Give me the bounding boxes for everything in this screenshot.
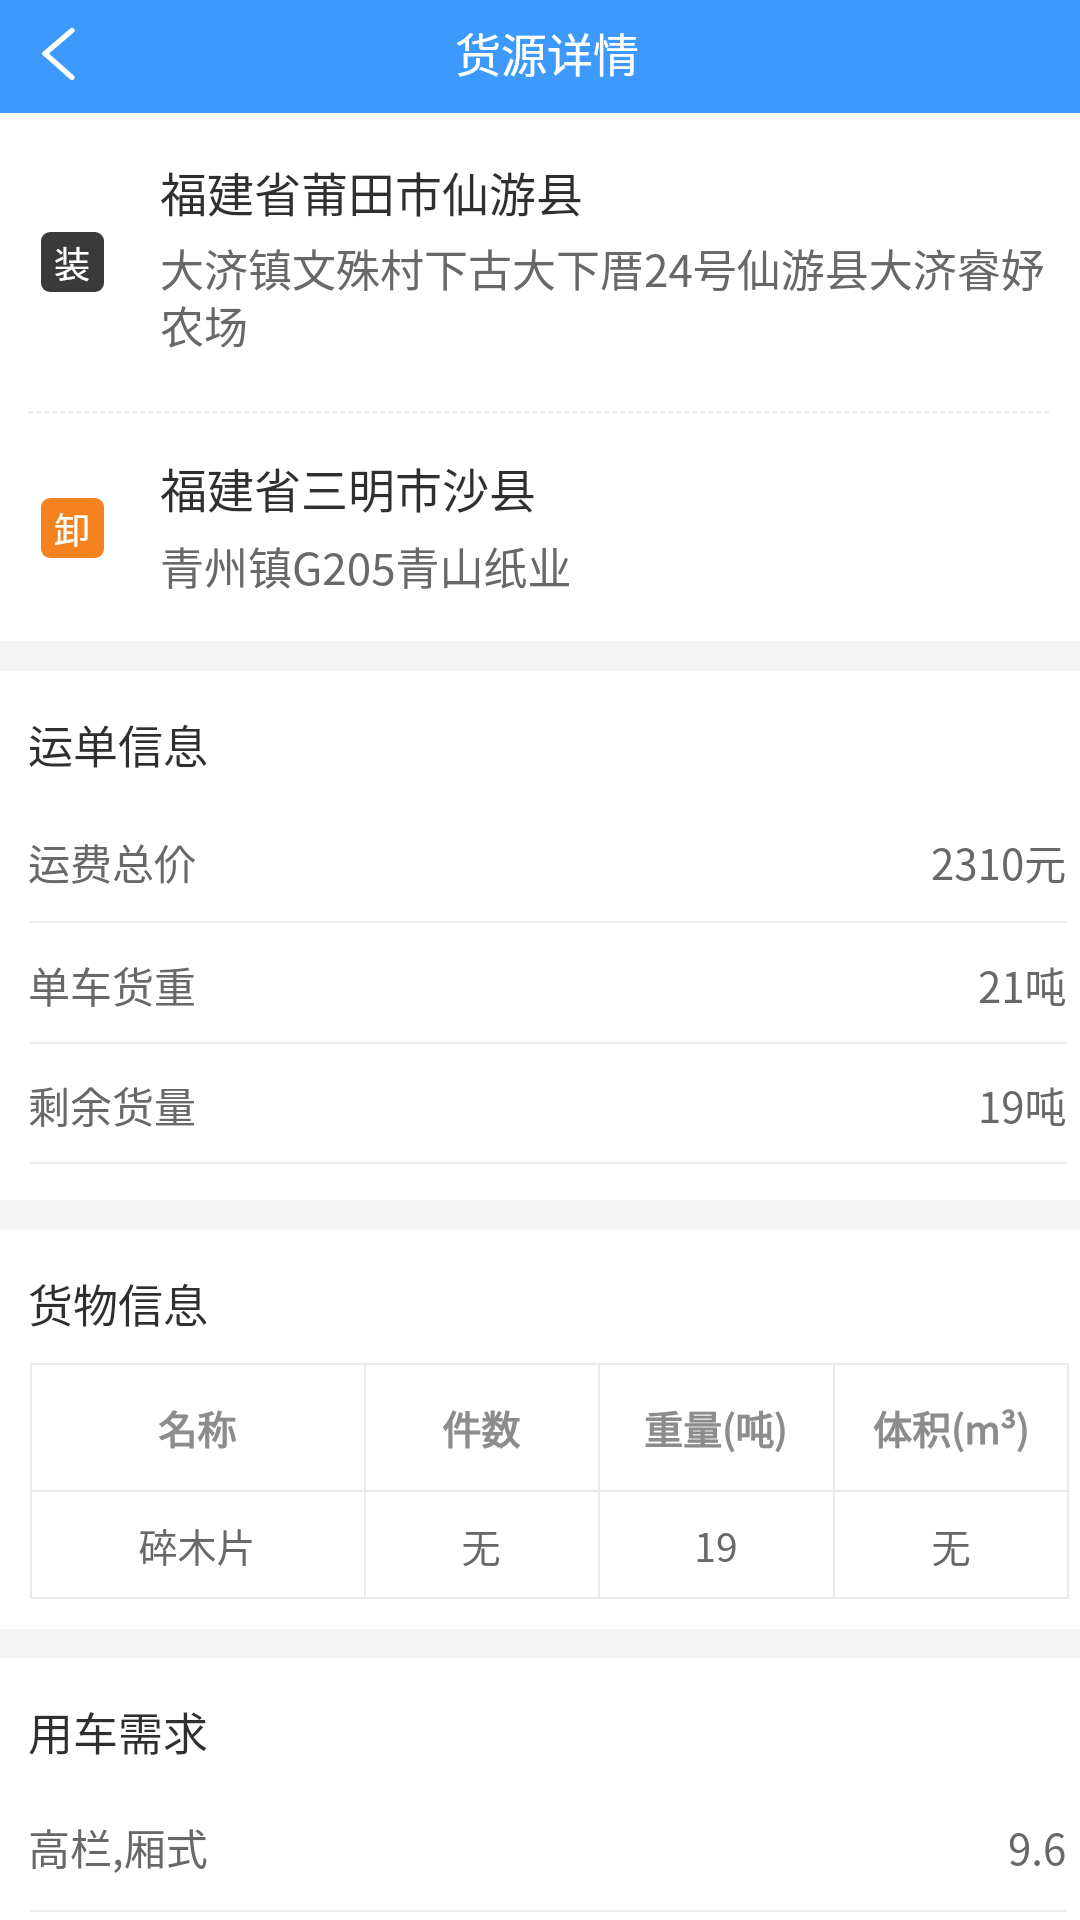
- staticText: 高栏,厢式: [28, 1816, 208, 1877]
- staticText: 2310元: [931, 831, 1067, 892]
- staticText: 剩余货量: [28, 1074, 197, 1135]
- button[interactable]: 剩余货量: [0, 1044, 1080, 1162]
- staticText: 福建省莆田市仙游县: [160, 157, 583, 225]
- button[interactable]: 用车需求: [0, 1658, 1080, 1765]
- staticText: 体积(m³): [873, 1399, 1030, 1455]
- staticText: 碎木片: [138, 1517, 256, 1573]
- staticText: 19: [694, 1517, 738, 1573]
- staticText: 单车货重: [28, 954, 197, 1015]
- staticText: 件数: [442, 1399, 521, 1455]
- staticText: 19吨: [978, 1074, 1067, 1135]
- staticText: 农场: [160, 293, 248, 357]
- button[interactable]: 装: [0, 113, 1080, 411]
- staticText: 青州镇G205青山纸业: [160, 534, 572, 598]
- staticText: 货物信息: [28, 1271, 209, 1336]
- staticText: 重量(吨): [644, 1399, 788, 1455]
- button[interactable]: 货物信息: [0, 1230, 1080, 1363]
- staticText: 货源详情: [455, 19, 639, 86]
- staticText: 21吨: [978, 954, 1067, 1015]
- staticText: 用车需求: [28, 1699, 209, 1764]
- button[interactable]: Back: [0, 0, 110, 113]
- button[interactable]: 高栏,厢式: [0, 1765, 1080, 1910]
- button[interactable]: 运费总价: [0, 778, 1080, 921]
- staticText: 大济镇文殊村下古大下厝24号仙游县大济睿妤: [160, 236, 1045, 300]
- staticText: 名称: [158, 1399, 237, 1455]
- staticText: 无: [931, 1517, 971, 1573]
- staticText: 装: [54, 236, 91, 288]
- button[interactable]: 运单信息: [0, 671, 1080, 778]
- staticText: 无: [461, 1517, 501, 1573]
- button[interactable]: 卸: [0, 414, 1080, 641]
- staticText: 运费总价: [28, 831, 197, 892]
- staticText: 福建省三明市沙县: [160, 453, 536, 521]
- staticText: 运单信息: [28, 712, 209, 777]
- button[interactable]: 单车货重: [0, 923, 1080, 1042]
- staticText: 9.6: [1008, 1816, 1067, 1877]
- staticText: 卸: [54, 502, 91, 554]
